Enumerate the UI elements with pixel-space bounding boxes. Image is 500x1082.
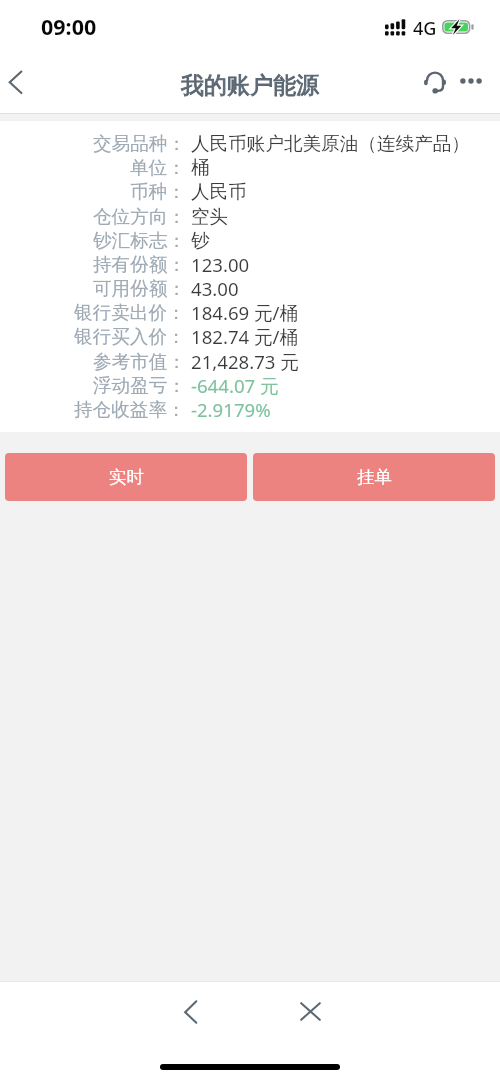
staticText: 4G: [413, 16, 437, 41]
staticText: 钞汇标志：: [93, 229, 186, 252]
staticText: -644.07 元: [191, 373, 279, 397]
staticText: 实时: [109, 466, 144, 488]
button[interactable]: Back: [0, 57, 44, 113]
staticText: 184.69 元/桶: [191, 300, 299, 324]
staticText: -2.9179%: [191, 397, 271, 421]
staticText: 人民币: [191, 180, 247, 203]
staticText: 123.00: [191, 252, 250, 276]
button[interactable]: 挂单: [253, 453, 495, 501]
staticText: 单位：: [130, 156, 186, 179]
staticText: 浮动盈亏：: [93, 374, 186, 397]
staticText: 交易品种：: [93, 132, 186, 155]
staticText: 参考市值：: [93, 350, 186, 373]
staticText: 43.00: [191, 276, 239, 300]
staticText: 人民币账户北美原油（连续产品）: [191, 132, 470, 155]
staticText: 我的账户能源: [181, 71, 319, 100]
staticText: 币种：: [130, 180, 186, 203]
staticText: 09:00: [41, 12, 97, 41]
staticText: 钞: [191, 229, 210, 252]
staticText: 182.74 元/桶: [191, 324, 299, 348]
staticText: 可用份额：: [93, 277, 186, 300]
staticText: 仓位方向：: [93, 205, 186, 228]
staticText: 桶: [191, 156, 210, 179]
staticText: 持仓收益率：: [74, 398, 186, 421]
staticText: 空头: [191, 205, 229, 228]
button[interactable]: 实时: [5, 453, 247, 501]
button[interactable]: Customer service: [415, 54, 455, 110]
staticText: 挂单: [357, 466, 392, 488]
staticText: 我的账户能源: [181, 71, 319, 100]
button[interactable]: More options: [451, 53, 491, 109]
staticText: 银行买入价：: [74, 325, 186, 348]
staticText: 21,428.73 元: [191, 349, 299, 373]
button[interactable]: Back: [163, 984, 219, 1040]
button[interactable]: Close: [282, 983, 338, 1039]
staticText: 银行卖出价：: [74, 301, 186, 324]
staticText: 持有份额：: [93, 253, 186, 276]
